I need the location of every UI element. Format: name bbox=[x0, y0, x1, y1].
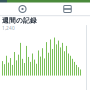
button[interactable]: Calendar bbox=[62, 4, 72, 14]
staticText: 1,240 bbox=[2, 25, 15, 31]
staticText: 週間の記録 bbox=[2, 16, 37, 25]
button[interactable]: Settings bbox=[17, 4, 27, 14]
